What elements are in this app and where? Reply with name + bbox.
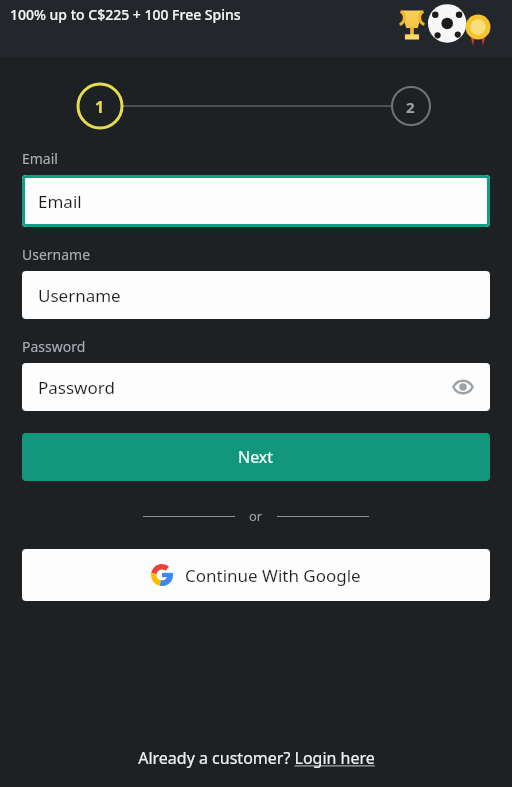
staticText: Password <box>22 337 86 356</box>
button[interactable]: Already a customer? Login here <box>138 747 375 769</box>
button[interactable]: Username <box>22 271 490 319</box>
staticText: 2 <box>406 97 415 117</box>
staticText: Already a customer? Login here <box>138 747 375 769</box>
staticText: Password <box>38 376 115 399</box>
staticText: Email <box>22 149 58 168</box>
staticText: Continue With Google <box>185 564 361 587</box>
staticText: Username <box>22 245 91 264</box>
staticText: or <box>249 507 263 525</box>
staticText: Username <box>38 284 121 307</box>
staticText: Email <box>38 190 82 213</box>
staticText: 1 <box>95 96 105 118</box>
button[interactable]: Email <box>22 175 490 227</box>
button[interactable]: Password <box>22 363 490 411</box>
staticText: Next <box>238 446 274 468</box>
button[interactable]: Next <box>22 433 490 481</box>
button[interactable]: Show password <box>450 374 476 400</box>
staticText: 100% up to C$225 + 100 Free Spins <box>10 5 241 24</box>
button[interactable]: Continue With Google <box>22 549 490 601</box>
